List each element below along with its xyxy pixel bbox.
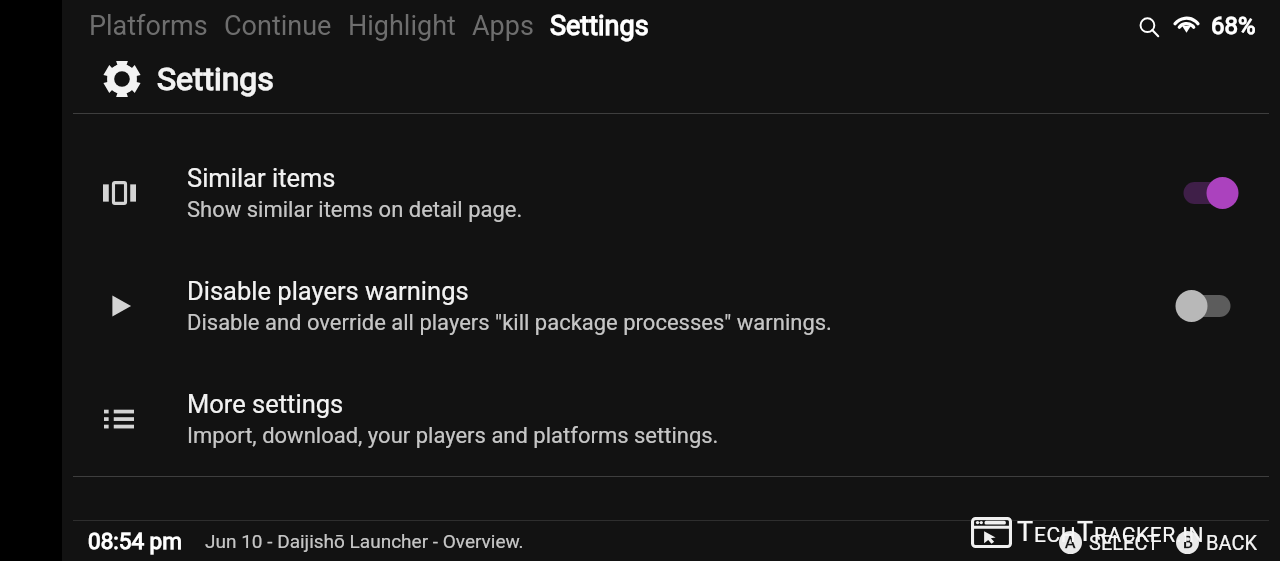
staticText: Jun 10 - Daijishō Launcher - Overview. xyxy=(205,530,524,552)
button[interactable]: A xyxy=(1059,531,1160,554)
staticText: Disable players warnings xyxy=(187,276,469,306)
button[interactable]: More settings xyxy=(62,375,1280,463)
staticText: Similar items xyxy=(187,163,336,193)
button[interactable]: Continue xyxy=(224,10,332,42)
staticText: SELECT xyxy=(1089,531,1160,554)
staticText: T xyxy=(1017,516,1034,548)
staticText: More settings xyxy=(187,389,344,419)
staticText: Import, download, your players and platf… xyxy=(187,423,719,449)
button[interactable]: Highlight xyxy=(348,10,456,42)
staticText: ECH xyxy=(1034,523,1077,548)
staticText: Continue xyxy=(224,10,332,42)
staticText: B xyxy=(1183,533,1193,552)
staticText: Apps xyxy=(472,10,534,42)
staticText: .IN xyxy=(1176,523,1205,548)
staticText: BACK xyxy=(1206,531,1257,554)
button[interactable]: Apps xyxy=(472,10,534,42)
staticText: Disable and override all players "kill p… xyxy=(187,310,832,336)
button[interactable]: Settings xyxy=(550,10,649,42)
staticText: Highlight xyxy=(348,10,456,42)
staticText: 08:54 pm xyxy=(88,528,182,554)
button[interactable]: Search xyxy=(1125,11,1155,41)
staticText: Platforms xyxy=(89,10,208,42)
button[interactable]: Disable players warnings switch xyxy=(1173,284,1241,328)
button[interactable]: Platforms xyxy=(89,10,208,42)
staticText: Settings xyxy=(157,60,274,98)
staticText: Settings xyxy=(550,10,649,42)
staticText: A xyxy=(1065,533,1076,552)
staticText: 68% xyxy=(1211,12,1256,40)
button[interactable]: Similar items xyxy=(62,149,1280,237)
button[interactable]: Disable players warnings xyxy=(62,262,1280,350)
staticText: RACKER xyxy=(1094,523,1176,548)
button[interactable]: B xyxy=(1176,531,1257,554)
button[interactable]: Similar items switch xyxy=(1173,171,1241,215)
staticText: T xyxy=(1077,516,1094,548)
staticText: Show similar items on detail page. xyxy=(187,197,523,223)
